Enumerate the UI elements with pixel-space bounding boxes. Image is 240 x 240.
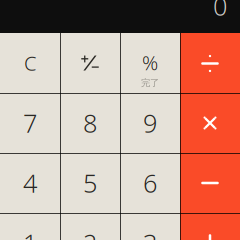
- button[interactable]: %: [120, 33, 180, 93]
- staticText: C: [24, 49, 36, 77]
- staticText: 9: [143, 106, 157, 140]
- button[interactable]: Divide: [180, 33, 240, 93]
- staticText: 0: [213, 0, 227, 23]
- button[interactable]: 8: [60, 93, 120, 153]
- button[interactable]: Multiply: [180, 93, 240, 153]
- staticText: 6: [143, 166, 157, 200]
- staticText: 8: [83, 106, 97, 140]
- button[interactable]: 3: [120, 213, 180, 240]
- button[interactable]: 9: [120, 93, 180, 153]
- button[interactable]: Subtract: [180, 153, 240, 213]
- button[interactable]: 1: [0, 213, 60, 240]
- staticText: 5: [83, 166, 97, 200]
- staticText: 1: [23, 226, 37, 240]
- staticText: 完了: [141, 77, 159, 89]
- button[interactable]: 4: [0, 153, 60, 213]
- button[interactable]: 6: [120, 153, 180, 213]
- staticText: 7: [23, 106, 37, 140]
- staticText: %: [142, 49, 158, 76]
- staticText: 2: [83, 226, 97, 240]
- staticText: 4: [23, 166, 37, 200]
- button[interactable]: C: [0, 33, 60, 93]
- button[interactable]: 7: [0, 93, 60, 153]
- button[interactable]: Add: [180, 213, 240, 240]
- staticText: 3: [143, 226, 157, 240]
- button[interactable]: 2: [60, 213, 120, 240]
- button[interactable]: 5: [60, 153, 120, 213]
- button[interactable]: Plus or minus: [60, 33, 120, 93]
